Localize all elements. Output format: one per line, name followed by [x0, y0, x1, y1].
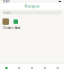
staticText: Search [3, 11, 11, 14]
button[interactable]: Browse [13, 64, 26, 72]
button[interactable]: Home [0, 64, 13, 72]
staticText: 9:41 [3, 0, 10, 3]
button[interactable]: Add [26, 64, 38, 72]
button[interactable]: Saved [38, 64, 51, 72]
staticText: Recipes [24, 3, 39, 9]
staticText: Chicken Salad [2, 26, 20, 30]
button[interactable]: Profile [51, 64, 64, 72]
button[interactable]: Search [2, 11, 62, 14]
